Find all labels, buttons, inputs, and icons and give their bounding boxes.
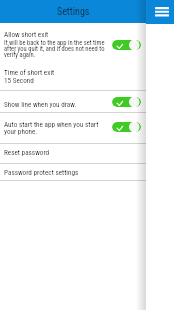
staticText: Allow short exit bbox=[4, 30, 49, 38]
staticText: your phone. bbox=[4, 127, 38, 135]
button[interactable] bbox=[0, 113, 146, 143]
staticText: Reset password bbox=[4, 148, 50, 156]
staticText: Auto start the app when you start bbox=[4, 120, 99, 128]
button[interactable] bbox=[0, 164, 146, 181]
button[interactable]: Toggle setting bbox=[112, 122, 141, 132]
button[interactable] bbox=[0, 60, 146, 90]
staticText: Time of short exit bbox=[4, 68, 55, 76]
button[interactable]: Open navigation menu bbox=[155, 6, 169, 17]
staticText: It will be back to the app in the set ti… bbox=[4, 39, 105, 47]
staticText: Settings bbox=[57, 6, 90, 18]
staticText: after you quit it, and it does not need … bbox=[4, 45, 105, 53]
button[interactable]: Toggle setting bbox=[112, 40, 141, 50]
button[interactable] bbox=[0, 91, 146, 112]
staticText: 15 Second bbox=[4, 76, 34, 84]
staticText: verify again. bbox=[4, 51, 36, 59]
button[interactable] bbox=[0, 144, 146, 163]
staticText: Password protect settings bbox=[4, 168, 79, 176]
button[interactable]: Toggle setting bbox=[112, 97, 141, 107]
button[interactable] bbox=[0, 23, 146, 60]
staticText: Show line when you draw. bbox=[4, 100, 77, 108]
